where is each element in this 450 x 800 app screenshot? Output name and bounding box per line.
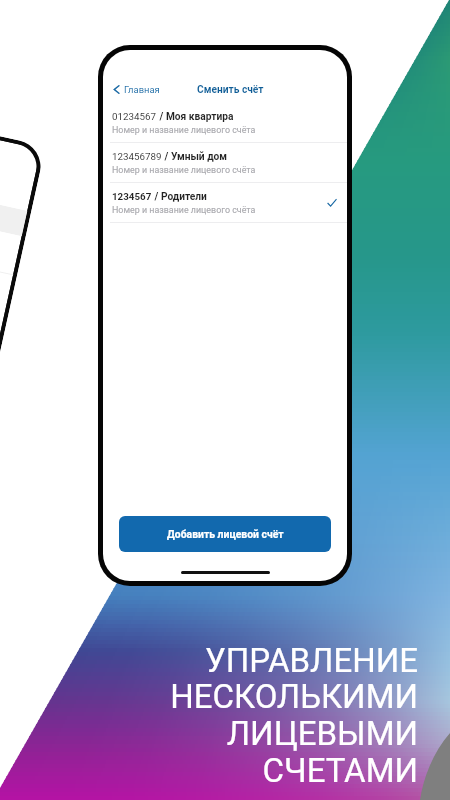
button[interactable]: Главная [111,84,160,95]
button[interactable]: Добавить лицевой счёт [119,516,331,552]
button[interactable]: 1234567 [103,183,347,223]
other: Selected [327,198,337,208]
staticText: / Моя квартира [157,111,234,123]
staticText: Добавить лицевой счёт [167,528,284,540]
button[interactable]: 01234567 [103,103,347,143]
staticText: Номер и название лицевого счёта [112,165,256,175]
staticText: Номер и название лицевого счёта [112,205,256,215]
staticText: Номер и название лицевого счёта [112,125,256,135]
staticText: Главная [124,84,160,95]
staticText: УПРАВЛЕНИЕ НЕСКОЛЬКИМИ ЛИЦЕВЫМИ СЧЕТАМИ [0,641,418,790]
staticText: / Умный дом [162,151,228,163]
staticText: 123456789 [112,151,162,162]
staticText: 1234567 [112,191,152,202]
staticText: / Родители [152,191,207,203]
staticText: Сменить счёт [197,84,264,96]
button[interactable]: 123456789 [103,143,347,183]
staticText: 01234567 [112,111,157,122]
